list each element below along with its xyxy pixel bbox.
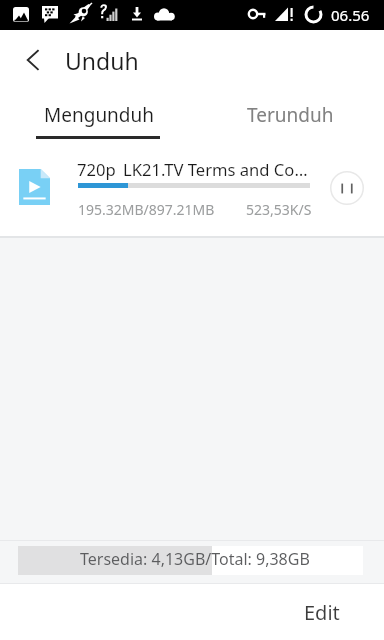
- staticText: 06.56: [331, 5, 370, 25]
- staticText: LK21.TV Terms and Co…: [123, 158, 308, 181]
- staticText: 523,53K/S: [246, 200, 312, 219]
- button[interactable]: Edit: [284, 586, 384, 639]
- staticText: Terunduh: [247, 102, 334, 128]
- staticText: Mengunduh: [44, 102, 155, 128]
- button[interactable]: 720p: [0, 142, 384, 236]
- button[interactable]: Terunduh: [206, 86, 371, 142]
- button[interactable]: Mengunduh: [14, 86, 179, 142]
- staticText: 195.32MB/897.21MB: [78, 200, 215, 219]
- staticText: 720p: [77, 158, 116, 181]
- button[interactable]: Pause download: [326, 167, 368, 209]
- staticText: Unduh: [65, 45, 139, 76]
- button[interactable]: Back: [12, 39, 54, 81]
- staticText: Tersedia: 4,13GB/Total: 9,38GB: [80, 548, 310, 570]
- staticText: Edit: [304, 599, 340, 626]
